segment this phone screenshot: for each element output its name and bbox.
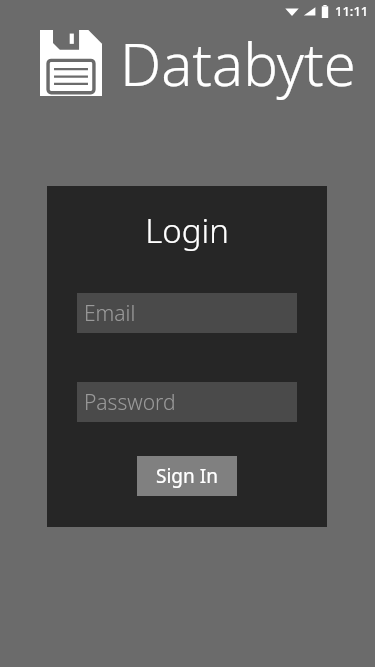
button[interactable]: Email: [77, 293, 297, 333]
staticText: Databyte: [120, 24, 356, 103]
staticText: Sign In: [156, 463, 218, 489]
staticText: Password: [84, 388, 176, 417]
other: Databyte logo: [40, 30, 102, 96]
button[interactable]: Sign In: [137, 456, 237, 496]
staticText: 11:11: [335, 2, 369, 20]
button[interactable]: Password: [77, 382, 297, 422]
staticText: Login: [145, 208, 229, 253]
staticText: Email: [84, 299, 136, 328]
